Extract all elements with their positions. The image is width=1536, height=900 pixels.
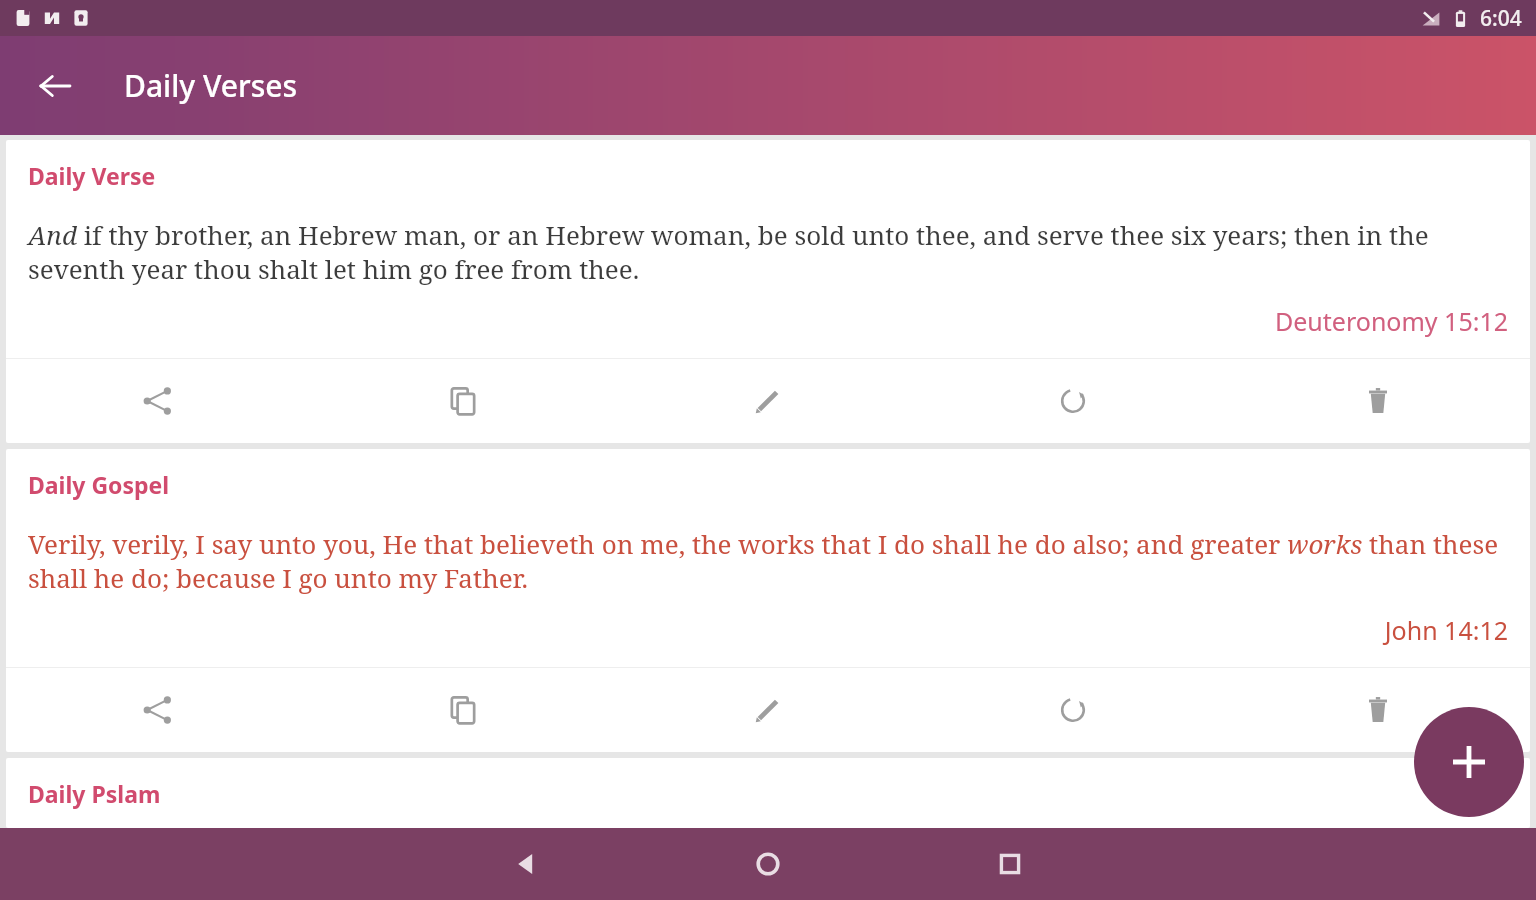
button[interactable]: Navigate up bbox=[23, 54, 87, 118]
button[interactable]: Home bbox=[647, 828, 889, 900]
button[interactable]: Recent apps bbox=[889, 828, 1131, 900]
staticText: 6:04 bbox=[1480, 4, 1522, 33]
button[interactable]: Daily Pslam bbox=[6, 758, 1530, 828]
staticText: John 14:12 bbox=[6, 613, 1508, 647]
button[interactable]: Share bbox=[6, 359, 310, 443]
staticText: Daily Verses bbox=[124, 65, 298, 106]
staticText: Deuteronomy 15:12 bbox=[6, 304, 1508, 338]
button[interactable]: Delete bbox=[1225, 359, 1530, 443]
button[interactable]: Daily Verse bbox=[6, 140, 1530, 443]
staticText: And if thy brother, an Hebrew man, or an… bbox=[28, 217, 1508, 286]
button[interactable]: Back bbox=[405, 828, 647, 900]
button[interactable]: Share bbox=[6, 668, 310, 752]
button[interactable]: Add verse bbox=[1414, 707, 1524, 817]
button[interactable]: Edit bbox=[615, 668, 920, 752]
button[interactable]: Delete bbox=[1225, 668, 1530, 752]
button[interactable]: Reset bbox=[920, 668, 1225, 752]
staticText: Daily Gospel bbox=[28, 469, 170, 500]
staticText: Verily, verily, I say unto you, He that … bbox=[28, 526, 1508, 595]
staticText: Daily Pslam bbox=[28, 778, 161, 809]
button[interactable]: Daily Gospel bbox=[6, 449, 1530, 752]
button[interactable]: Copy bbox=[310, 359, 615, 443]
button[interactable]: Copy bbox=[310, 668, 615, 752]
staticText: Daily Verse bbox=[28, 160, 156, 191]
button[interactable]: Edit bbox=[615, 359, 920, 443]
button[interactable]: Reset bbox=[920, 359, 1225, 443]
